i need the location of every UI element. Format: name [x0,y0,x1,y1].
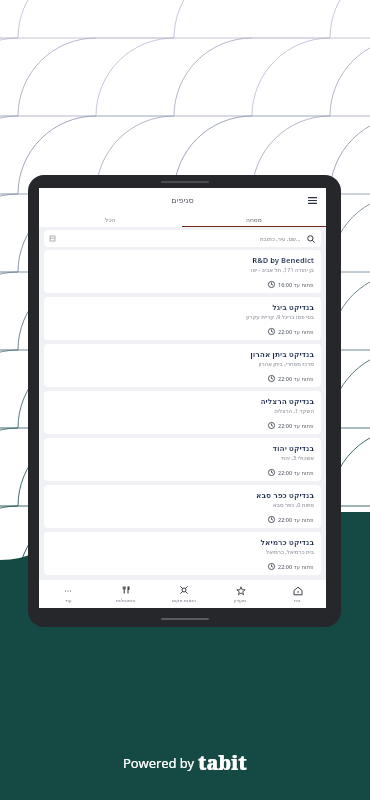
staticText: השקד 1, הרצליה [274,407,314,414]
staticText: Powered by [123,754,198,772]
staticText: פתוח עד 22:00 [278,469,314,476]
staticText: סניפים [171,196,194,205]
button[interactable]: הזמנות/ות [97,580,155,608]
staticText: tabit [198,750,247,776]
button[interactable]: בנדיקט ביתן אהרון [44,344,321,387]
staticText: פתוח עד 22:00 [278,563,314,570]
button[interactable]: הכל [39,212,182,227]
staticText: בנדיקט יהוד [272,443,314,453]
button[interactable]: בנדיקט כפר סבא [44,485,321,528]
staticText: בסי פסו בריגל 9, קריית עקרון [246,313,314,320]
staticText: בית [294,598,301,603]
staticText: בנדיקט הרצליה [260,396,314,406]
button[interactable]: Menu [304,192,320,208]
other: Search [306,234,315,243]
staticText: R&D by Benedict [252,255,314,265]
staticText: מרכז מסחרי, ביתן אהרון [258,360,314,367]
staticText: מסחה [246,216,262,223]
button[interactable]: R&D by Benedict [44,250,321,293]
staticText: פתוח עד 22:00 [278,375,314,382]
button[interactable]: בנדיקט כרמיאל [44,532,321,575]
staticText: פתוח עד 22:00 [278,516,314,523]
staticText: עוד [65,598,72,603]
staticText: בנדיקט ביתן אהרון [250,349,314,359]
staticText: בן יהודה 171, תל אביב - יפו [250,266,314,273]
staticText: בית כרמיאל, כרמיאל [266,548,314,555]
staticText: הזמנות/ות [116,597,136,603]
staticText: בנדיקט כפר סבא [256,490,314,500]
staticText: פתוח עד 22:00 [278,422,314,429]
button[interactable]: מועדון [212,580,269,608]
staticText: אשכולי 3, יהוד [280,454,314,461]
button[interactable]: בית [269,580,326,608]
staticText: הזמנת מקום [172,597,196,603]
button[interactable]: שם, עיר, כתובת... [44,230,321,247]
staticText: מועדון [234,598,247,603]
button[interactable]: הזמנת מקום [155,580,212,608]
staticText: שם, עיר, כתובת... [260,235,301,242]
button[interactable]: בנדיקט ביגל [44,297,321,340]
staticText: פתוח עד 16:00 [278,281,314,288]
staticText: פתוח עד 22:00 [278,328,314,335]
button[interactable]: עוד [39,580,97,608]
button[interactable]: מסחה [182,212,326,227]
staticText: הכל [105,216,116,223]
button[interactable]: בנדיקט יהוד [44,438,321,481]
staticText: פתוח 0, כפר סבא [273,501,314,508]
staticText: בנדיקט כרמיאל [260,537,314,547]
staticText: בנדיקט ביגל [272,302,314,312]
button[interactable]: בנדיקט הרצליה [44,391,321,434]
